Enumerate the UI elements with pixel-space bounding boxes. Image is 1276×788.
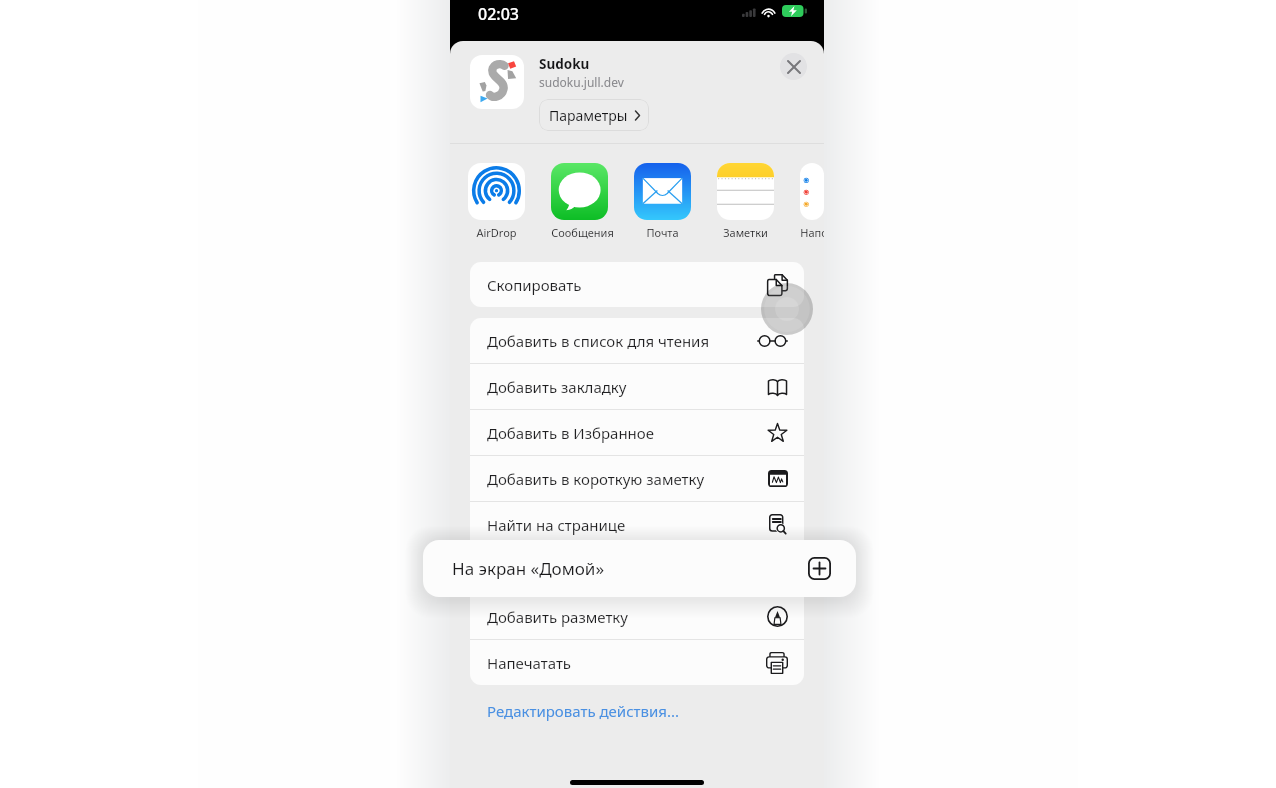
button[interactable]: Параметры bbox=[539, 99, 649, 131]
button[interactable]: Напечатать bbox=[470, 640, 804, 685]
staticText: Добавить в короткую заметку bbox=[487, 469, 705, 489]
staticText: sudoku.jull.dev bbox=[539, 74, 624, 90]
button[interactable]: Добавить в Избранное bbox=[470, 410, 804, 455]
button[interactable]: Добавить разметку bbox=[470, 594, 804, 639]
staticText: Напечатать bbox=[487, 653, 572, 673]
button[interactable]: Редактировать действия... bbox=[470, 688, 804, 733]
button[interactable]: Добавить в короткую заметку bbox=[470, 456, 804, 501]
staticText: Добавить в Избранное bbox=[487, 423, 654, 443]
button[interactable]: Close bbox=[780, 53, 807, 80]
button[interactable]: Найти на странице bbox=[470, 502, 804, 547]
staticText: Sudoku bbox=[539, 55, 590, 73]
staticText: Напоминания bbox=[800, 225, 824, 240]
staticText: 02:03 bbox=[478, 3, 519, 25]
button[interactable]: Почта bbox=[634, 163, 691, 240]
button[interactable]: Сообщения bbox=[551, 163, 608, 240]
staticText: Добавить закладку bbox=[487, 377, 627, 397]
staticText: Сообщения bbox=[551, 225, 608, 240]
staticText: AirDrop bbox=[476, 225, 517, 240]
staticText: Почта bbox=[646, 225, 679, 240]
staticText: Параметры bbox=[549, 106, 628, 125]
staticText: На экран «Домой» bbox=[452, 557, 605, 580]
staticText: На экран «Домой» bbox=[487, 561, 622, 581]
staticText: Добавить в список для чтения bbox=[487, 331, 710, 351]
button[interactable]: Заметки bbox=[717, 163, 774, 240]
button[interactable]: Скопировать bbox=[470, 262, 804, 307]
button[interactable]: Напоминания bbox=[800, 163, 824, 240]
staticText: Скопировать bbox=[487, 275, 582, 295]
staticText: Заметки bbox=[723, 225, 768, 240]
staticText: Редактировать действия... bbox=[487, 701, 680, 721]
button[interactable]: На экран «Домой» bbox=[470, 548, 804, 593]
button[interactable]: Добавить закладку bbox=[470, 364, 804, 409]
button[interactable]: Добавить в список для чтения bbox=[470, 318, 804, 363]
button[interactable]: На экран «Домой» bbox=[423, 540, 856, 597]
staticText: Найти на странице bbox=[487, 515, 626, 535]
staticText: Добавить разметку bbox=[487, 607, 628, 627]
button[interactable]: AirDrop bbox=[468, 163, 525, 240]
